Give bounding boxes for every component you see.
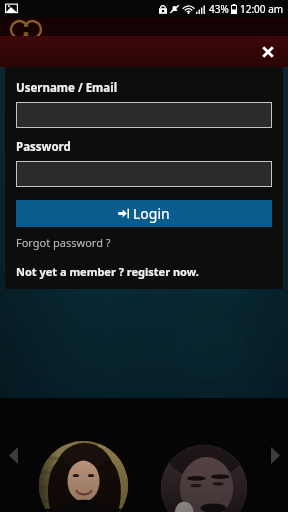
button[interactable]: Member photo xyxy=(39,441,128,512)
staticText: 12:00 am xyxy=(240,2,284,16)
staticText: Not yet a member ? register now. xyxy=(16,264,199,279)
button[interactable] xyxy=(16,161,272,187)
button[interactable]: Close xyxy=(254,38,282,66)
staticText: Forgot password ? xyxy=(16,235,111,250)
staticText: 43% xyxy=(209,2,229,16)
button[interactable]: Not yet a member ? register now. xyxy=(16,264,199,279)
staticText: Password xyxy=(16,139,71,155)
button[interactable]: Login xyxy=(16,200,272,227)
button[interactable]: Previous xyxy=(0,434,26,476)
staticText: Login xyxy=(133,204,170,223)
button[interactable] xyxy=(16,102,272,128)
button[interactable]: Member photo xyxy=(161,445,247,512)
staticText: Username / Email xyxy=(16,80,118,96)
button[interactable]: Forgot password ? xyxy=(16,235,111,250)
button[interactable]: Next xyxy=(262,434,288,476)
